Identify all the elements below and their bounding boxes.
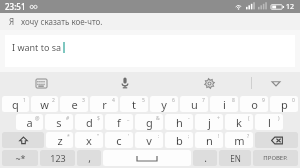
button[interactable]: 123 bbox=[40, 150, 75, 166]
staticText: o bbox=[251, 97, 258, 112]
staticText: b bbox=[176, 133, 183, 148]
button[interactable]: Hide keyboard bbox=[252, 72, 300, 94]
button[interactable]: i bbox=[210, 96, 238, 112]
button[interactable]: z bbox=[46, 132, 73, 148]
button[interactable]: g bbox=[135, 114, 163, 130]
staticText: ' bbox=[128, 133, 130, 140]
button[interactable]: , bbox=[77, 150, 101, 166]
button[interactable]: f bbox=[105, 114, 133, 130]
button[interactable]: k bbox=[225, 114, 253, 130]
staticText: # bbox=[66, 115, 70, 122]
staticText: w bbox=[40, 97, 49, 112]
button[interactable]: EN bbox=[219, 150, 251, 166]
staticText: h bbox=[176, 115, 183, 130]
staticText: 12 bbox=[286, 2, 295, 12]
staticText: 123 bbox=[50, 152, 66, 164]
staticText: ? bbox=[247, 133, 250, 140]
staticText: $ bbox=[97, 115, 100, 122]
staticText: - bbox=[188, 115, 190, 122]
staticText: : bbox=[158, 133, 160, 140]
button[interactable]: d bbox=[75, 114, 103, 130]
staticText: EN bbox=[230, 153, 241, 164]
staticText: * bbox=[67, 133, 70, 140]
staticText: y bbox=[161, 97, 167, 112]
button[interactable]: r bbox=[90, 96, 118, 112]
button[interactable]: v bbox=[135, 132, 163, 148]
staticText: + bbox=[217, 115, 220, 122]
staticText: u bbox=[191, 97, 198, 112]
button[interactable]: w bbox=[31, 96, 58, 112]
staticText: ! bbox=[218, 133, 220, 140]
button[interactable]: ПРОВЕР. bbox=[253, 150, 298, 166]
button[interactable]: o bbox=[240, 96, 268, 112]
staticText: ( bbox=[248, 115, 250, 122]
button[interactable]: ~* bbox=[2, 150, 38, 166]
staticText: n bbox=[206, 133, 213, 148]
staticText: , bbox=[88, 151, 91, 165]
button[interactable]: l bbox=[255, 114, 283, 130]
staticText: 0 bbox=[292, 97, 295, 104]
staticText: 6 bbox=[172, 97, 175, 104]
button[interactable]: m bbox=[225, 132, 253, 148]
button[interactable]: Shift bbox=[2, 132, 44, 148]
button[interactable]: y bbox=[150, 96, 178, 112]
button[interactable]: q bbox=[2, 96, 29, 112]
button[interactable]: Backspace bbox=[255, 132, 298, 148]
staticText: 23:51 bbox=[5, 1, 26, 12]
staticText: j bbox=[208, 115, 211, 130]
button[interactable]: a bbox=[16, 114, 43, 130]
staticText: ~* bbox=[15, 152, 26, 164]
button[interactable]: Settings bbox=[167, 72, 251, 94]
staticText: Я bbox=[9, 16, 15, 27]
staticText: . bbox=[204, 151, 207, 165]
button[interactable]: x bbox=[75, 132, 103, 148]
staticText: r bbox=[102, 97, 107, 112]
button[interactable]: Voice input bbox=[83, 72, 167, 94]
staticText: ПРОВЕР. bbox=[263, 154, 288, 162]
staticText: 5 bbox=[142, 97, 145, 104]
staticText: " bbox=[97, 133, 100, 140]
staticText: i bbox=[223, 97, 226, 112]
button[interactable]: Я bbox=[0, 13, 300, 30]
staticText: s bbox=[56, 115, 62, 130]
staticText: v bbox=[146, 133, 152, 148]
staticText: ) bbox=[278, 115, 280, 122]
staticText: k bbox=[236, 115, 242, 130]
staticText: 9 bbox=[262, 97, 265, 104]
staticText: f bbox=[117, 115, 121, 130]
staticText: & bbox=[156, 115, 160, 122]
staticText: ; bbox=[188, 133, 190, 140]
button[interactable]: . bbox=[193, 150, 217, 166]
button[interactable]: n bbox=[195, 132, 223, 148]
staticText: m bbox=[234, 133, 245, 148]
button[interactable]: h bbox=[165, 114, 193, 130]
staticText: d bbox=[86, 115, 93, 130]
staticText: 3 bbox=[82, 97, 85, 104]
button[interactable]: e bbox=[60, 96, 88, 112]
button[interactable]: Space bbox=[103, 150, 191, 166]
staticText: z bbox=[57, 133, 63, 148]
button[interactable]: Keyboard layouts bbox=[0, 72, 83, 94]
staticText: хочу сказать кое-что. bbox=[21, 16, 103, 27]
staticText: l bbox=[268, 115, 271, 130]
staticText: 2 bbox=[52, 97, 55, 104]
button[interactable]: j bbox=[195, 114, 223, 130]
staticText: x bbox=[86, 133, 92, 148]
staticText: 1 bbox=[23, 97, 26, 104]
staticText: q bbox=[12, 97, 19, 112]
staticText: p bbox=[281, 97, 288, 112]
staticText: a bbox=[26, 115, 33, 130]
button[interactable]: p bbox=[270, 96, 298, 112]
staticText: e bbox=[71, 97, 78, 112]
staticText: 8 bbox=[232, 97, 235, 104]
staticText: c bbox=[116, 133, 122, 148]
button[interactable]: t bbox=[120, 96, 148, 112]
button[interactable]: I want to sa bbox=[5, 35, 295, 67]
staticText: t bbox=[132, 97, 136, 112]
button[interactable]: c bbox=[105, 132, 133, 148]
button[interactable]: s bbox=[45, 114, 73, 130]
button[interactable]: u bbox=[180, 96, 208, 112]
button[interactable]: b bbox=[165, 132, 193, 148]
staticText: 7 bbox=[202, 97, 205, 104]
staticText: 4 bbox=[112, 97, 115, 104]
